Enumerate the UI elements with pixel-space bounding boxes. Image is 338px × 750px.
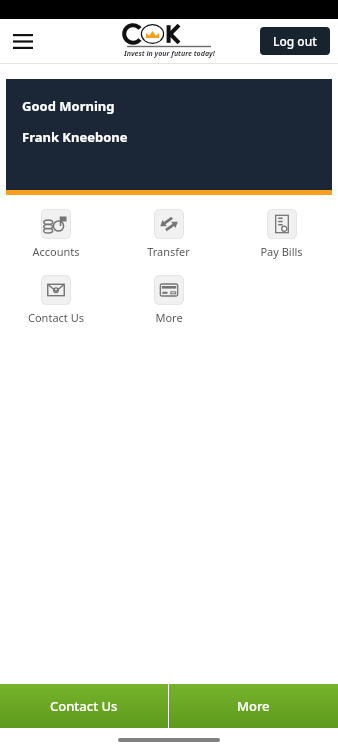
- button[interactable]: Contact Us: [0, 684, 168, 728]
- staticText: More: [155, 310, 183, 325]
- button[interactable]: Menu: [4, 22, 42, 60]
- button[interactable]: More: [112, 275, 225, 325]
- staticText: Accounts: [32, 244, 80, 259]
- button[interactable]: More: [169, 684, 338, 728]
- button[interactable]: Transfer: [112, 209, 225, 259]
- staticText: Log out: [273, 33, 317, 49]
- button[interactable]: Accounts: [0, 209, 112, 259]
- staticText: Pay Bills: [260, 244, 303, 259]
- staticText: Transfer: [147, 244, 190, 259]
- staticText: More: [237, 697, 270, 715]
- staticText: Contact Us: [28, 310, 84, 325]
- staticText: Contact Us: [50, 697, 118, 715]
- staticText: Good Morning: [22, 97, 115, 115]
- button[interactable]: Contact Us: [0, 275, 112, 325]
- button[interactable]: Log out: [260, 27, 330, 55]
- staticText: Frank Kneebone: [22, 128, 128, 146]
- button[interactable]: Pay Bills: [225, 209, 338, 259]
- staticText: Invest in your future today!: [124, 49, 215, 59]
